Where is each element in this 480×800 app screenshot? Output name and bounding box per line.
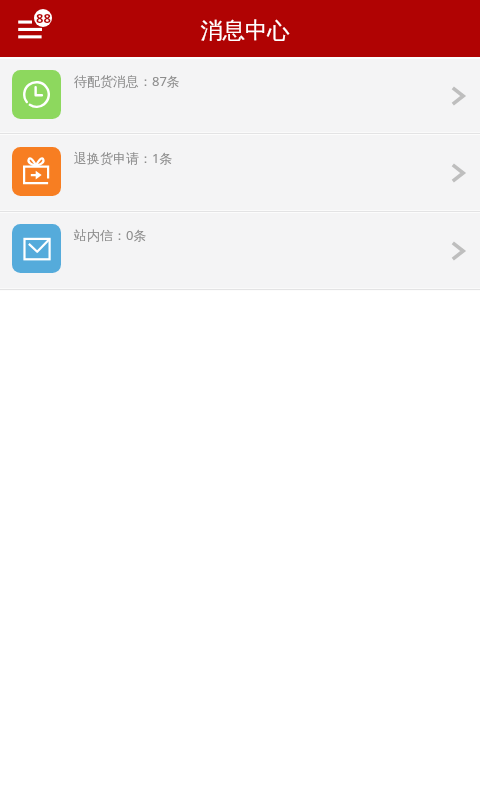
- staticText: 消息中心: [200, 17, 290, 45]
- staticText: 站内信：0条: [74, 226, 147, 244]
- staticText: 退换货申请：1条: [74, 149, 173, 167]
- button[interactable]: 退换货申请：1条: [0, 135, 480, 210]
- button[interactable]: 站内信：0条: [0, 213, 480, 288]
- staticText: 88: [36, 9, 51, 27]
- staticText: 待配货消息：87条: [74, 72, 180, 90]
- button[interactable]: Menu: [14, 4, 56, 44]
- button[interactable]: 待配货消息：87条: [0, 59, 480, 132]
